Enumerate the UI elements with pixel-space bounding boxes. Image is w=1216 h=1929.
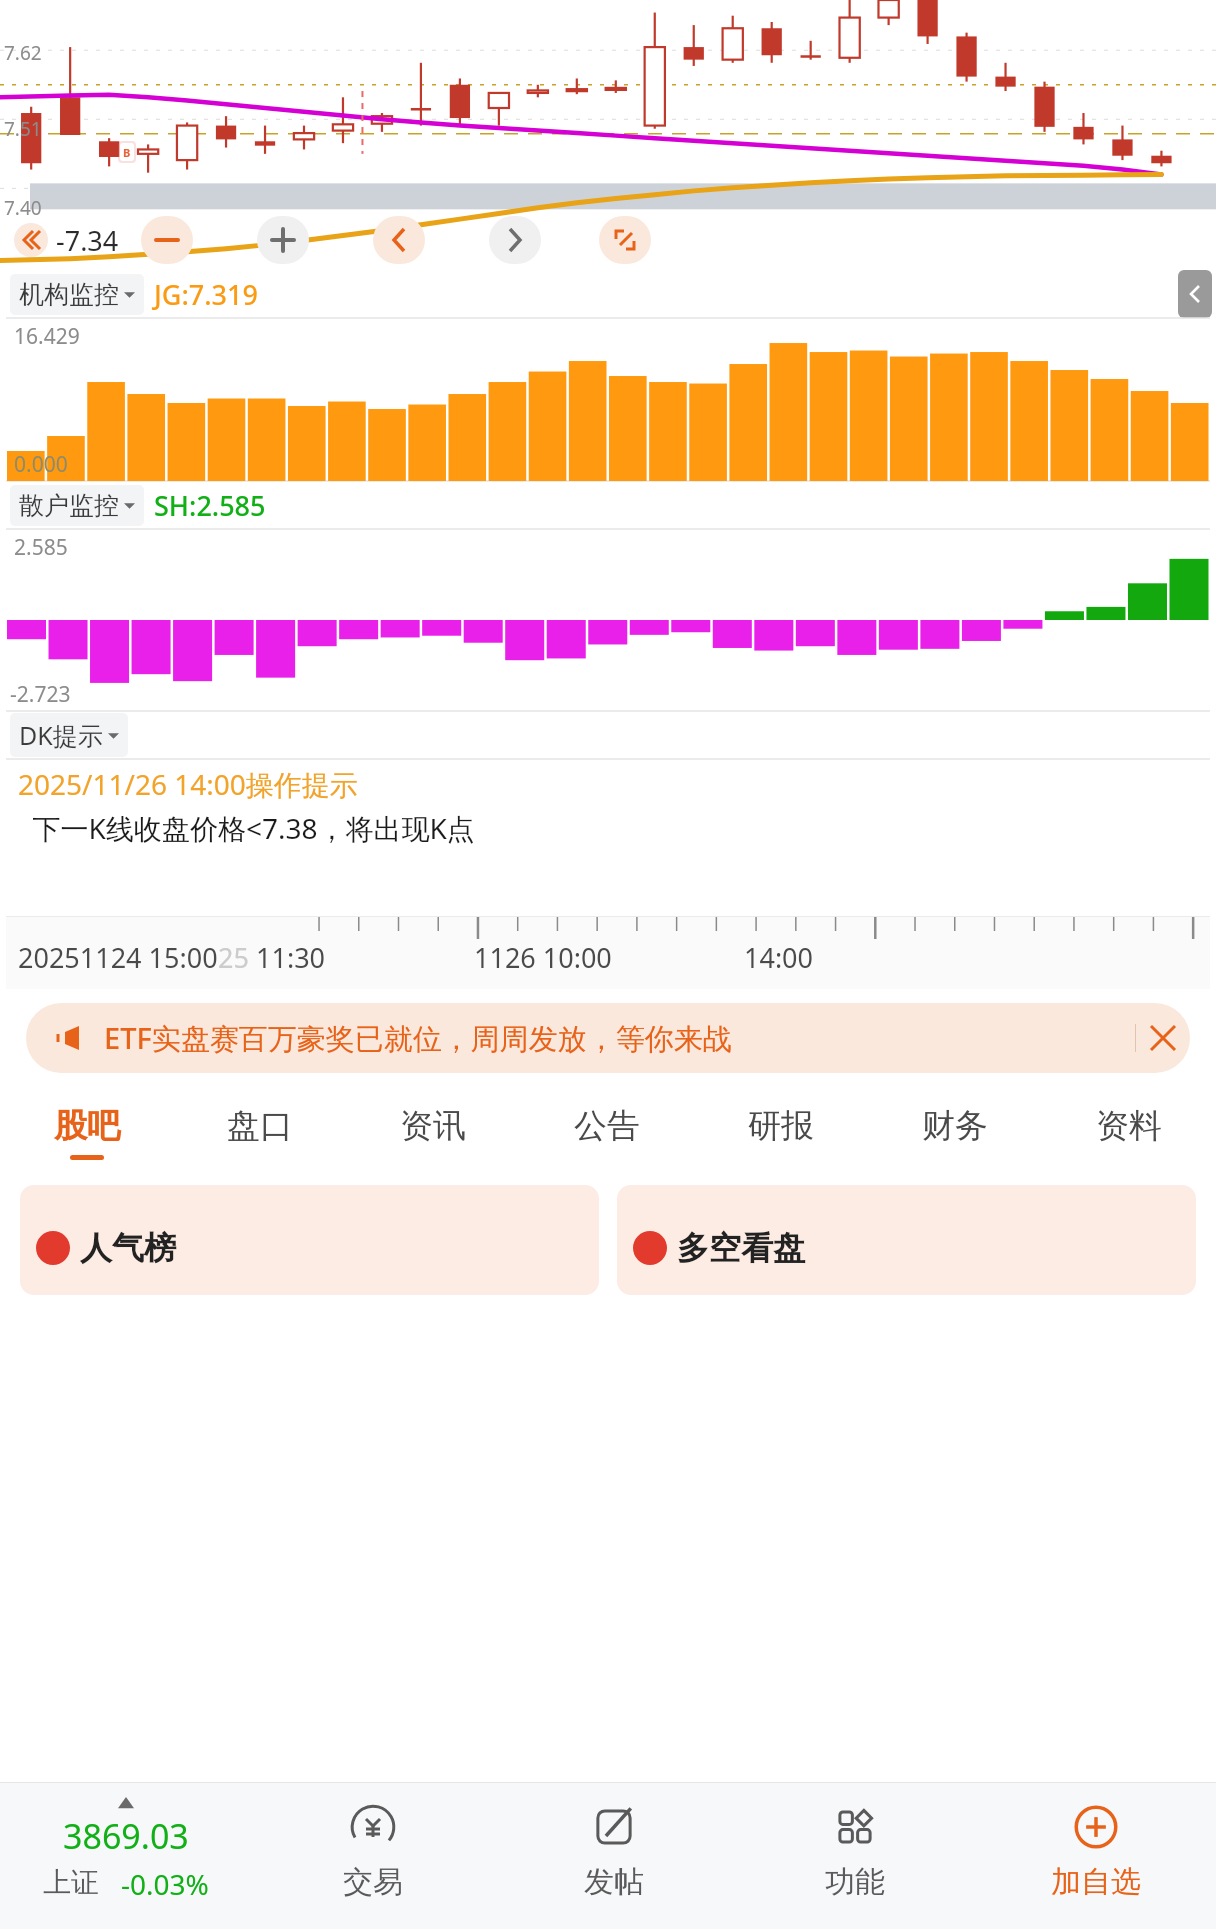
staticText: B — [123, 145, 131, 160]
button[interactable]: 发帖 — [493, 1783, 734, 1929]
staticText: 发帖 — [584, 1863, 644, 1901]
staticText: 加自选 — [1051, 1863, 1141, 1901]
staticText: 20251124 15:00 — [18, 939, 218, 976]
button[interactable]: 财务 — [868, 1089, 1042, 1175]
staticText: 资料 — [1096, 1105, 1162, 1147]
staticText: 2.585 — [14, 533, 68, 562]
button[interactable]: Zoom in — [257, 216, 309, 264]
button[interactable]: Zoom out — [141, 216, 193, 264]
staticText: 公告 — [574, 1105, 640, 1147]
staticText: 散户监控 — [19, 490, 119, 521]
button[interactable]: Collapse — [1178, 270, 1212, 318]
staticText: 股吧 — [54, 1105, 120, 1147]
staticText: 资讯 — [400, 1105, 466, 1147]
staticText: 2025/11/26 14:00操作提示 — [18, 765, 358, 803]
button[interactable]: 人气榜 — [20, 1185, 599, 1295]
button[interactable]: Close — [1136, 1011, 1190, 1065]
staticText: 人气榜 — [80, 1228, 176, 1268]
staticText: 0.000 — [14, 450, 68, 479]
staticText: 上证 — [43, 1865, 99, 1900]
staticText: 14:00 — [744, 939, 814, 976]
staticText: 16.429 — [14, 322, 80, 351]
button[interactable]: 多空看盘 — [617, 1185, 1196, 1295]
button[interactable]: 资料 — [1042, 1089, 1216, 1175]
staticText: -7.34 — [56, 222, 119, 259]
staticText: -0.03% — [121, 1865, 209, 1903]
staticText: ETF实盘赛百万豪奖已就位，周周发放，等你来战 — [104, 1018, 732, 1058]
button[interactable]: 功能 — [734, 1783, 975, 1929]
button[interactable]: 研报 — [694, 1089, 868, 1175]
staticText: 3869.03 — [63, 1813, 189, 1859]
button[interactable]: 资讯 — [346, 1089, 520, 1175]
staticText: 多空看盘 — [677, 1228, 805, 1268]
button[interactable]: 3869.03 — [0, 1783, 252, 1929]
staticText: JG:7.319 — [154, 276, 258, 313]
button[interactable]: 公告 — [520, 1089, 694, 1175]
staticText: 机构监控 — [19, 279, 119, 310]
staticText: 11:30 — [249, 939, 326, 976]
staticText: 1126 10:00 — [474, 939, 612, 976]
staticText: SH:2.585 — [154, 487, 266, 524]
staticText: 交易 — [343, 1863, 403, 1901]
staticText: 研报 — [748, 1105, 814, 1147]
button[interactable]: 盘口 — [173, 1089, 346, 1175]
button[interactable]: ETF实盘赛百万豪奖已就位，周周发放，等你来战 — [26, 1003, 1190, 1073]
staticText: 7.62 — [4, 40, 42, 66]
staticText: 财务 — [922, 1105, 988, 1147]
staticText: 下一K线收盘价格<7.38，将出现K点 — [18, 809, 475, 847]
staticText: 功能 — [825, 1863, 885, 1901]
button[interactable]: Fullscreen — [599, 216, 651, 264]
button[interactable]: 股吧 — [0, 1089, 173, 1175]
button[interactable]: Next — [489, 216, 541, 264]
button[interactable]: 机构监控 — [19, 279, 135, 310]
staticText: 25 — [218, 939, 249, 976]
button[interactable]: DK提示 — [19, 718, 119, 752]
staticText: 7.51 — [4, 116, 42, 142]
staticText: -2.723 — [10, 680, 71, 709]
staticText: DK提示 — [19, 718, 103, 752]
button[interactable]: 加自选 — [975, 1783, 1216, 1929]
button[interactable]: 交易 — [252, 1783, 493, 1929]
button[interactable]: 散户监控 — [19, 490, 135, 521]
button[interactable]: Previous — [373, 216, 425, 264]
staticText: 7.40 — [4, 195, 42, 221]
staticText: 盘口 — [227, 1105, 293, 1147]
